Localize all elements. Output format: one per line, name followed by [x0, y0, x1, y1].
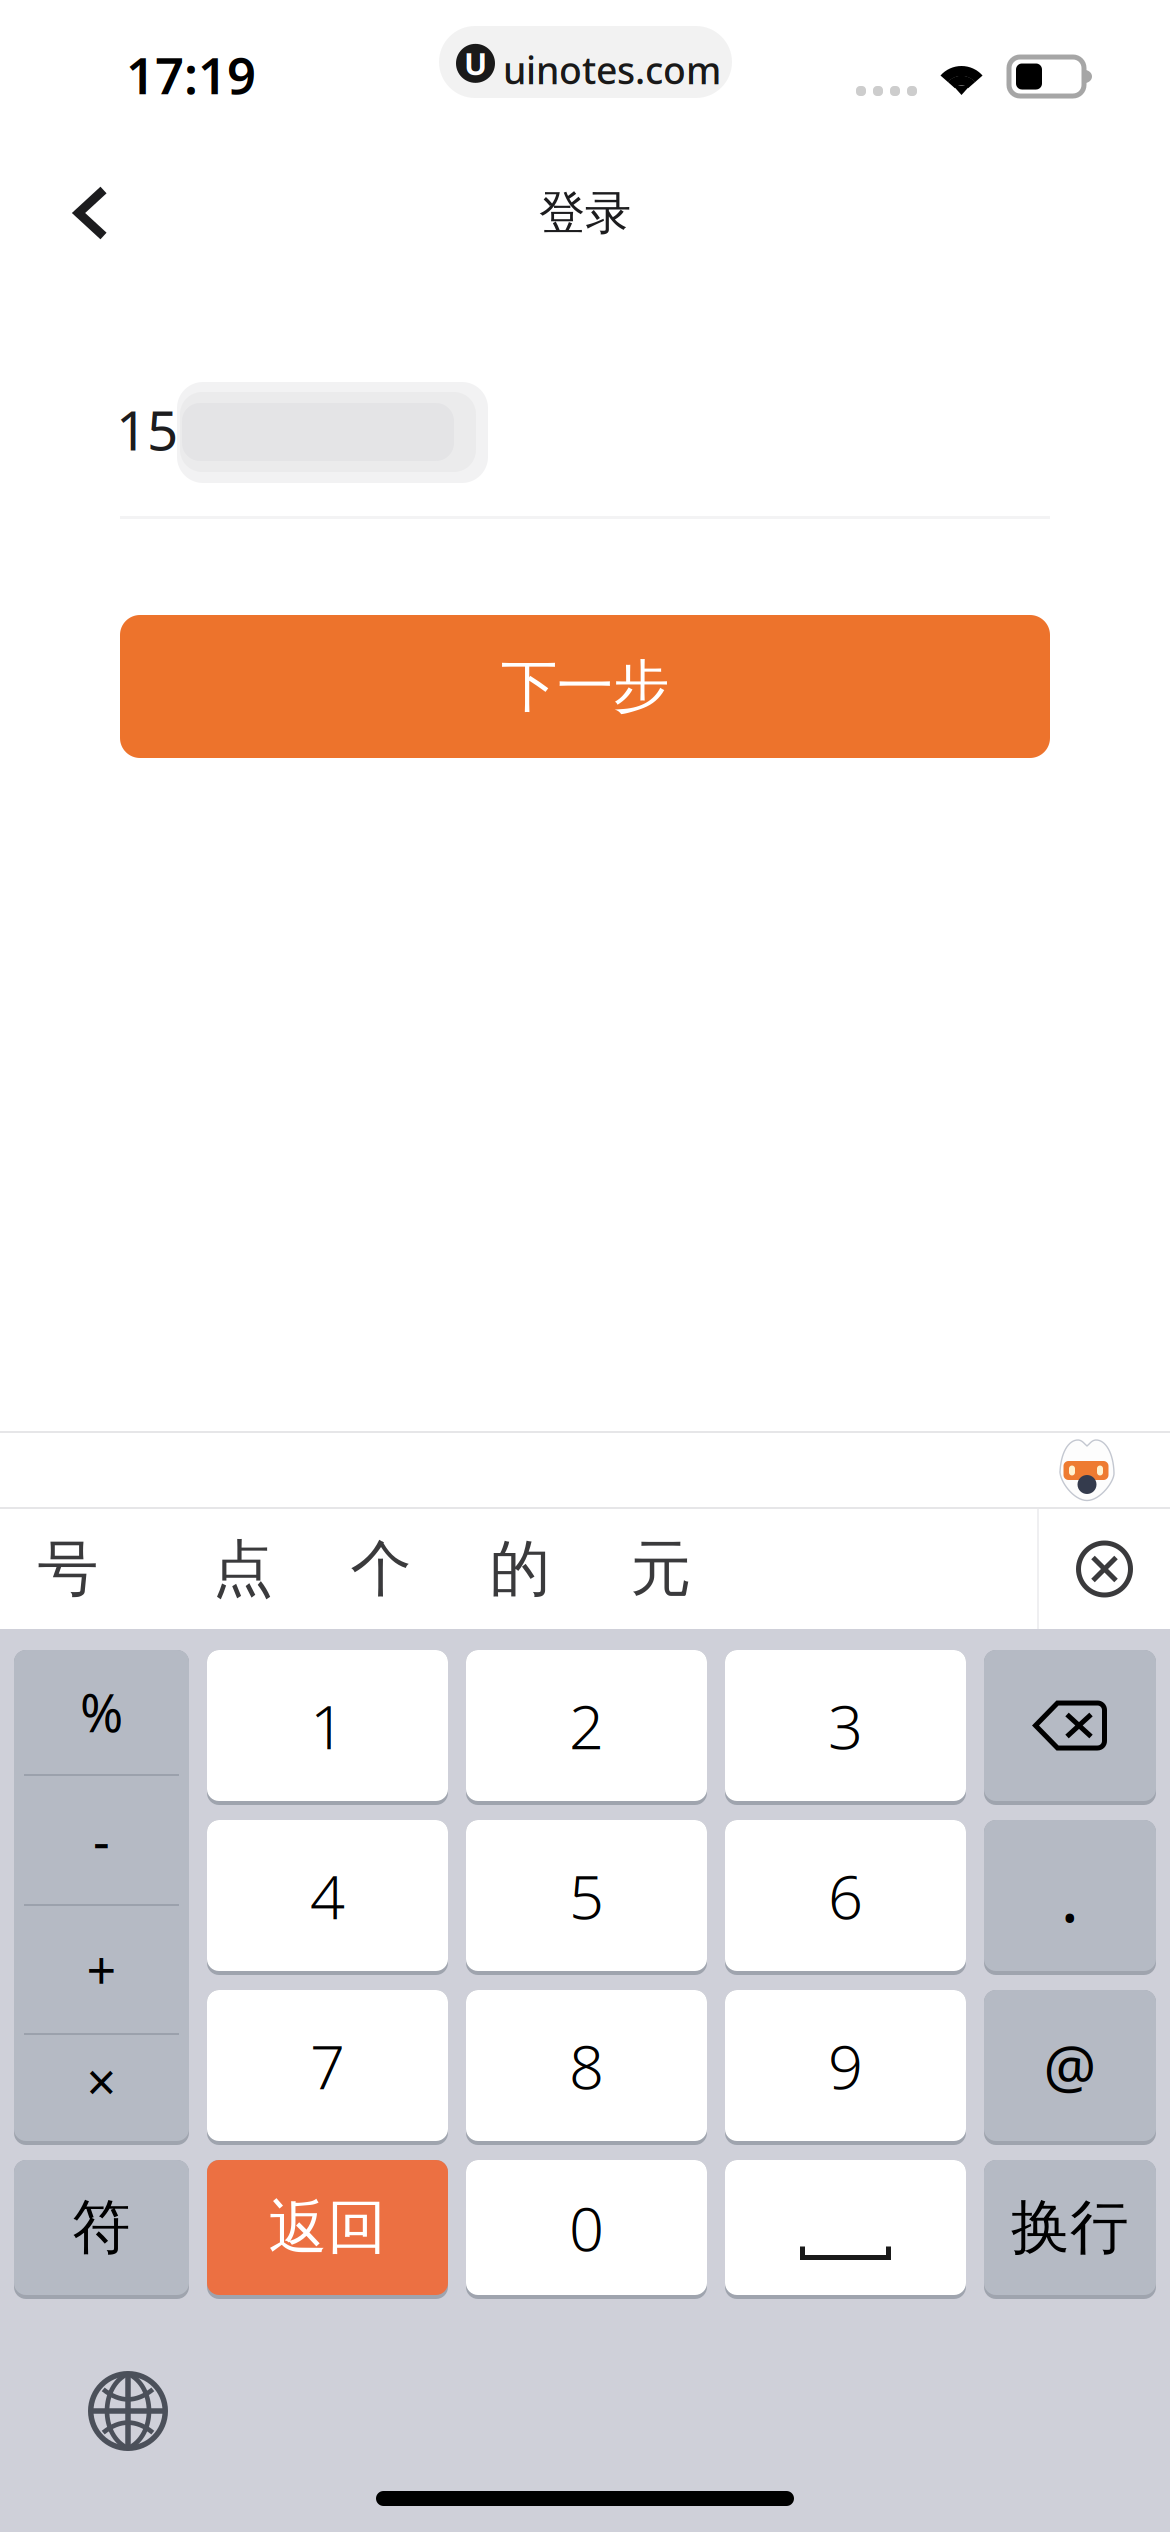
button[interactable] — [984, 1650, 1156, 1801]
button[interactable]: Keyboard assistant — [1041, 1431, 1133, 1509]
button[interactable]: 符 — [14, 2160, 189, 2295]
button[interactable]: . — [984, 1820, 1156, 1971]
button[interactable]: 1 — [207, 1650, 448, 1801]
button[interactable]: 7 — [207, 1990, 448, 2141]
staticText: 5 — [569, 1855, 604, 1936]
button[interactable]: 8 — [466, 1990, 707, 2141]
staticText: + — [86, 1935, 116, 2004]
staticText: U — [464, 43, 487, 84]
button[interactable]: 的 — [450, 1509, 590, 1629]
staticText: 下一步 — [501, 651, 669, 722]
button[interactable]: × — [14, 2028, 189, 2134]
staticText: 17:19 — [126, 41, 256, 108]
staticText: 登录 — [539, 184, 631, 242]
staticText: 返回 — [268, 2191, 386, 2264]
staticText: % — [80, 1677, 123, 1747]
staticText: @ — [1043, 2026, 1096, 2104]
button[interactable]: 0 — [466, 2160, 707, 2295]
button[interactable]: 6 — [725, 1820, 966, 1971]
staticText: 号 — [37, 1531, 98, 1607]
staticText: 的 — [489, 1531, 550, 1607]
button[interactable]: 5 — [466, 1820, 707, 1971]
staticText: 符 — [72, 2191, 131, 2264]
staticText: 9 — [828, 2025, 863, 2106]
staticText: 0 — [569, 2187, 604, 2268]
button[interactable]: 号 — [0, 1509, 138, 1629]
button[interactable]: 元 — [591, 1509, 731, 1629]
button[interactable]: Clear input — [1039, 1509, 1170, 1629]
staticText: - — [93, 1805, 110, 1875]
staticText: 3 — [828, 1685, 863, 1766]
staticText: 2 — [569, 1685, 604, 1766]
button[interactable]: 返回 — [207, 2160, 448, 2295]
staticText: 1 — [310, 1685, 345, 1766]
staticText: 点 — [212, 1531, 273, 1607]
staticText: × — [86, 2046, 116, 2116]
button[interactable]: % — [14, 1650, 189, 1774]
staticText: 4 — [310, 1855, 345, 1936]
staticText: 7 — [310, 2025, 345, 2106]
staticText: 换行 — [1011, 2191, 1129, 2264]
staticText: 元 — [630, 1531, 691, 1607]
button[interactable]: @ — [984, 1990, 1156, 2141]
staticText: 15 — [116, 393, 178, 466]
button[interactable]: 个 — [311, 1509, 451, 1629]
staticText: 8 — [569, 2025, 604, 2106]
button[interactable] — [725, 2160, 966, 2295]
button[interactable]: 4 — [207, 1820, 448, 1971]
staticText: 6 — [828, 1855, 863, 1936]
staticText: . — [1060, 1849, 1079, 1942]
button[interactable]: Switch keyboard — [68, 2357, 188, 2465]
button[interactable]: + — [14, 1906, 189, 2033]
staticText: uinotes.com — [503, 45, 721, 95]
button[interactable]: 换行 — [984, 2160, 1156, 2295]
button[interactable]: 3 — [725, 1650, 966, 1801]
button[interactable]: 点 — [173, 1509, 313, 1629]
button[interactable]: - — [14, 1776, 189, 1904]
staticText: 个 — [350, 1531, 411, 1607]
button[interactable]: 下一步 — [120, 615, 1050, 758]
button[interactable]: 2 — [466, 1650, 707, 1801]
button[interactable]: Back — [31, 168, 151, 258]
button[interactable]: 9 — [725, 1990, 966, 2141]
